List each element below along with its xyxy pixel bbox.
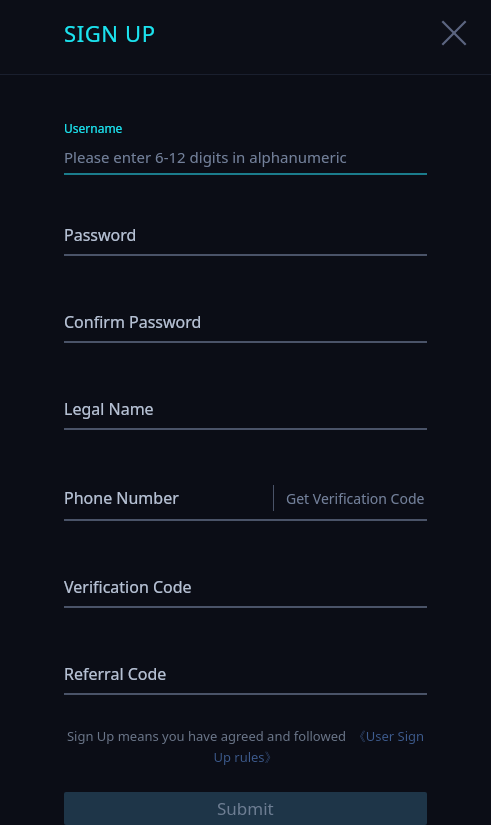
staticText: Password <box>64 224 137 246</box>
staticText: Please enter 6-12 digits in alphanumeric <box>64 147 347 167</box>
button[interactable]: Phone Number <box>64 485 427 521</box>
button[interactable]: Submit <box>64 792 427 825</box>
button[interactable]: Password <box>64 224 427 256</box>
staticText: Submit <box>217 797 274 820</box>
staticText: Sign Up means you have agreed and follow… <box>64 727 427 766</box>
button[interactable]: Username <box>64 120 427 175</box>
button[interactable]: Close <box>433 12 475 54</box>
button[interactable]: Referral Code <box>64 663 427 695</box>
button[interactable]: Verification Code <box>64 576 427 608</box>
button[interactable]: Get Verification Code <box>274 489 427 508</box>
staticText: Verification Code <box>64 576 192 598</box>
staticText: Legal Name <box>64 398 154 420</box>
button[interactable]: Legal Name <box>64 398 427 430</box>
staticText: Phone Number <box>64 487 179 509</box>
button[interactable]: Confirm Password <box>64 311 427 343</box>
staticText: Get Verification Code <box>286 489 425 508</box>
staticText: Referral Code <box>64 663 167 685</box>
staticText: Username <box>64 120 123 136</box>
staticText: Confirm Password <box>64 311 202 333</box>
staticText: SIGN UP <box>64 18 156 48</box>
